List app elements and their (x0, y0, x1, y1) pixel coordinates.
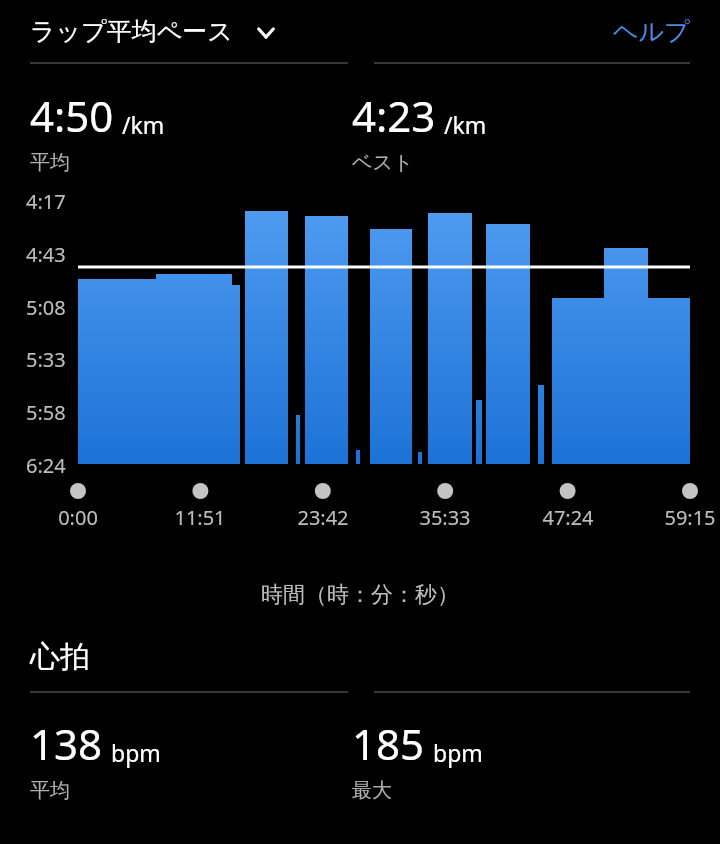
staticText: 47:24 (524, 504, 612, 531)
staticText: 5:58 (26, 399, 66, 426)
staticText: 平均 (30, 778, 70, 803)
staticText: 心拍 (30, 638, 90, 676)
staticText: ヘルプ (613, 16, 690, 47)
staticText: 4:23 (352, 87, 436, 144)
staticText: 4:43 (26, 241, 66, 268)
staticText: 138 (30, 715, 103, 772)
staticText: ラップ平均ペース (30, 16, 233, 47)
button[interactable]: ラップ平均ペース (30, 16, 279, 47)
button[interactable]: 138 (30, 715, 348, 803)
staticText: /km (444, 109, 487, 140)
staticText: 11:51 (156, 504, 244, 531)
staticText: bpm (111, 737, 161, 768)
button[interactable]: 4:23 (352, 87, 720, 175)
staticText: bpm (433, 737, 483, 768)
staticText: ベスト (352, 150, 414, 175)
staticText: 時間（時：分：秒） (261, 581, 459, 609)
staticText: 59:15 (646, 504, 720, 531)
staticText: 185 (352, 715, 425, 772)
button[interactable]: ヘルプ (613, 16, 690, 47)
staticText: 23:42 (279, 504, 367, 531)
staticText: 6:24 (26, 452, 66, 479)
staticText: 0:00 (34, 504, 122, 531)
staticText: 4:17 (26, 188, 66, 215)
button[interactable]: 4:50 (30, 87, 348, 175)
staticText: 4:50 (30, 87, 114, 144)
staticText: 5:08 (26, 294, 66, 321)
staticText: 平均 (30, 150, 70, 175)
staticText: 35:33 (401, 504, 489, 531)
staticText: 最大 (352, 778, 392, 803)
staticText: 5:33 (26, 346, 66, 373)
other: Change metric (253, 19, 279, 45)
button[interactable]: 185 (352, 715, 720, 803)
staticText: /km (122, 109, 165, 140)
